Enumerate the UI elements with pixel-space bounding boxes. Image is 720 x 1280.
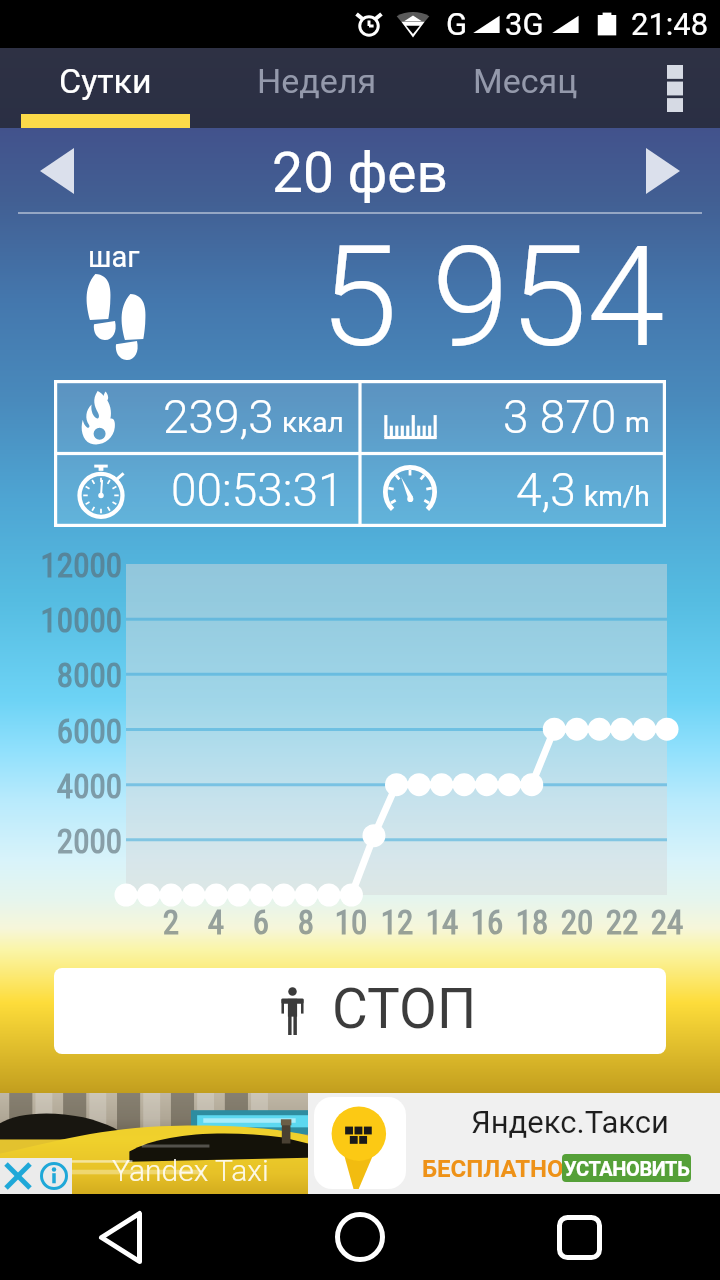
button[interactable]: Close ad — [0, 1158, 36, 1194]
staticText: 8 — [276, 903, 336, 942]
staticText: 4 — [186, 903, 246, 942]
button[interactable]: Back — [80, 1197, 160, 1277]
staticText: 6 — [231, 903, 291, 942]
staticText: СТОП — [332, 977, 477, 1041]
button[interactable]: Home — [320, 1197, 400, 1277]
staticText: 2000 — [2, 822, 122, 861]
staticText: 3 870 — [503, 390, 617, 444]
staticText: ккал — [282, 406, 344, 439]
button[interactable]: 239,3 — [54, 380, 360, 453]
staticText: 6000 — [2, 712, 122, 751]
staticText: 12000 — [2, 546, 122, 585]
button[interactable]: Yandex Taxi app icon — [314, 1097, 406, 1189]
button[interactable]: 3 870 — [360, 380, 666, 453]
staticText: 18 — [502, 903, 562, 942]
staticText: Месяц — [473, 61, 578, 101]
staticText: шаг — [88, 240, 140, 274]
button[interactable]: СТОП — [54, 968, 666, 1054]
button[interactable]: Неделя — [211, 48, 422, 128]
staticText: Yandex Taxi — [112, 1153, 269, 1188]
staticText: 24 — [637, 903, 697, 942]
staticText: 4,3 — [516, 463, 576, 517]
staticText: 3G — [505, 6, 544, 42]
staticText: 8000 — [2, 656, 122, 695]
staticText: 22 — [592, 903, 652, 942]
staticText: 20 фев — [272, 141, 448, 205]
staticText: 21:48 — [631, 6, 709, 42]
staticText: km/h — [584, 480, 650, 513]
staticText: G — [446, 6, 468, 42]
button[interactable]: 00:53:31 — [54, 453, 360, 527]
staticText: 5 954 — [320, 215, 665, 379]
staticText: 239,3 — [163, 390, 274, 444]
staticText: 12 — [367, 903, 427, 942]
staticText: 00:53:31 — [171, 463, 344, 517]
staticText: 10000 — [2, 601, 122, 640]
staticText: Неделя — [257, 61, 377, 101]
staticText: УСТАНОВИТЬ — [564, 1157, 690, 1180]
staticText: 4000 — [2, 767, 122, 806]
staticText: Сутки — [59, 61, 152, 101]
button[interactable]: Ad info — [36, 1158, 72, 1194]
button[interactable]: УСТАНОВИТЬ — [562, 1154, 691, 1182]
staticText: m — [625, 406, 650, 439]
button[interactable]: Месяц — [422, 48, 629, 128]
staticText: 2 — [141, 903, 201, 942]
button[interactable]: Recent apps — [539, 1197, 619, 1277]
staticText: Яндекс.Такси — [471, 1104, 669, 1140]
button[interactable]: More options — [629, 48, 720, 128]
button[interactable]: Next day — [632, 140, 694, 202]
button[interactable]: Сутки — [0, 48, 211, 128]
button[interactable]: Previous day — [26, 140, 88, 202]
staticText: БЕСПЛАТНО — [422, 1155, 564, 1183]
staticText: 16 — [457, 903, 517, 942]
button[interactable]: 4,3 — [360, 453, 666, 527]
staticText: 20 — [547, 903, 607, 942]
staticText: 14 — [412, 903, 472, 942]
staticText: 10 — [321, 903, 381, 942]
